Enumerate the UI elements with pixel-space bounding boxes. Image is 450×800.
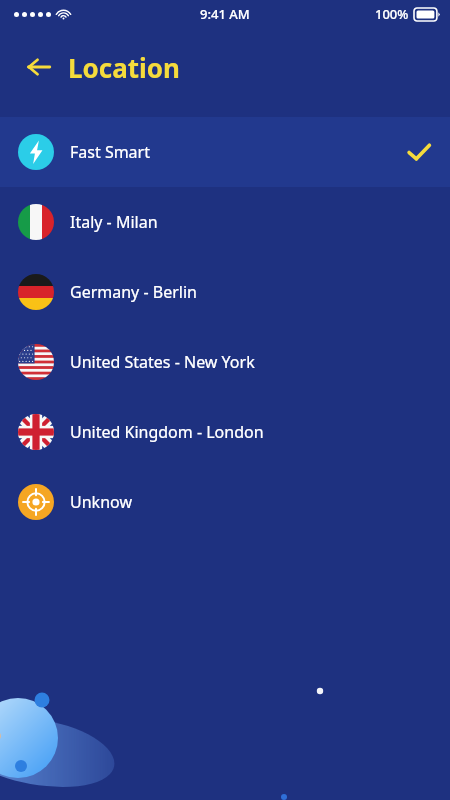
- staticText: Unknow: [70, 491, 432, 513]
- staticText: 9:41 AM: [200, 5, 250, 23]
- button[interactable]: Fast Smart: [0, 117, 450, 187]
- button[interactable]: United Kingdom - London: [0, 397, 450, 467]
- button[interactable]: Back: [22, 50, 56, 84]
- staticText: Fast Smart: [70, 141, 406, 163]
- button[interactable]: Unknow: [0, 467, 450, 537]
- staticText: Location: [68, 50, 180, 85]
- button[interactable]: Germany - Berlin: [0, 257, 450, 327]
- staticText: Italy - Milan: [70, 211, 432, 233]
- staticText: United States - New York: [70, 351, 432, 373]
- staticText: Germany - Berlin: [70, 281, 432, 303]
- button[interactable]: Italy - Milan: [0, 187, 450, 257]
- staticText: 100%: [375, 5, 409, 23]
- staticText: United Kingdom - London: [70, 421, 432, 443]
- button[interactable]: United States - New York: [0, 327, 450, 397]
